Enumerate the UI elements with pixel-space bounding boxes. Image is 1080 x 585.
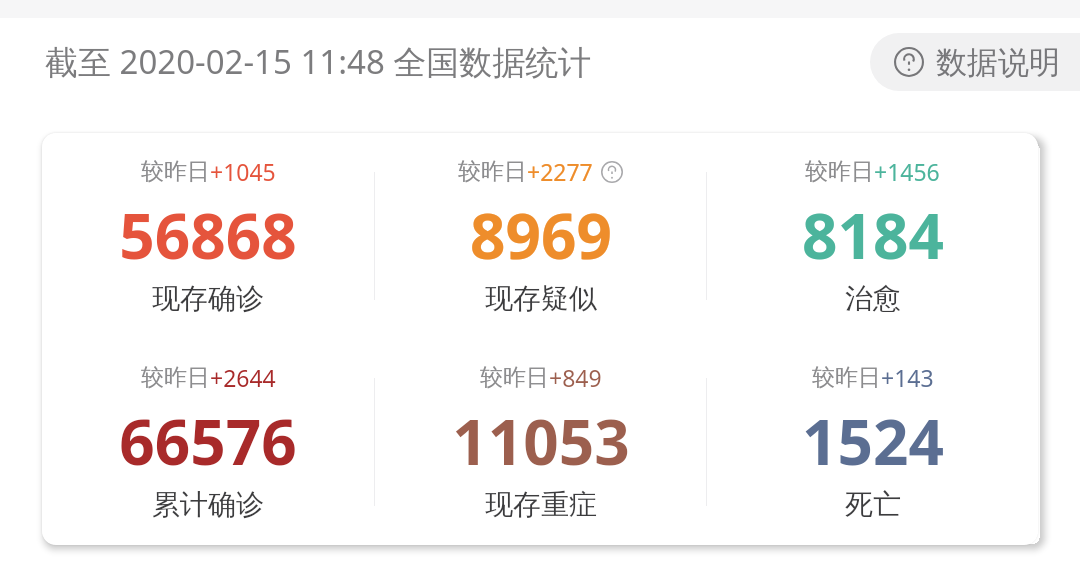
button[interactable]: 较昨日 (375, 362, 706, 522)
button[interactable]: 较昨日 (707, 362, 1038, 522)
staticText: 治愈 (845, 281, 901, 316)
button[interactable]: 较昨日 (375, 156, 706, 316)
staticText: 66576 (119, 399, 297, 483)
button[interactable]: 数据说明 (870, 33, 1080, 91)
staticText: 56868 (119, 193, 297, 277)
staticText: 数据说明 (936, 43, 1060, 82)
staticText: +2644 (210, 362, 276, 393)
staticText: 1524 (802, 399, 944, 483)
staticText: 死亡 (845, 487, 901, 522)
staticText: 现存重症 (485, 487, 597, 522)
button[interactable]: 较昨日 (42, 362, 374, 522)
staticText: +849 (549, 362, 602, 393)
button[interactable]: 较昨日 (707, 156, 1038, 316)
staticText: +1456 (874, 156, 940, 187)
staticText: +143 (881, 362, 934, 393)
staticText: 截至 2020-02-15 11:48 全国数据统计 (45, 39, 592, 84)
staticText: +2277 (527, 156, 593, 187)
staticText: 较昨日 (141, 157, 210, 186)
staticText: 较昨日 (805, 157, 874, 186)
staticText: 较昨日 (480, 363, 549, 392)
staticText: 较昨日 (458, 157, 527, 186)
staticText: 较昨日 (141, 363, 210, 392)
staticText: +1045 (210, 156, 276, 187)
staticText: 现存疑似 (485, 281, 597, 316)
staticText: 较昨日 (812, 363, 881, 392)
staticText: 现存确诊 (152, 281, 264, 316)
staticText: 8184 (802, 193, 944, 277)
staticText: 11053 (452, 399, 630, 483)
other: 说明 (601, 161, 623, 183)
button[interactable]: 较昨日 (42, 156, 374, 316)
staticText: 8969 (470, 193, 612, 277)
staticText: 累计确诊 (152, 487, 264, 522)
